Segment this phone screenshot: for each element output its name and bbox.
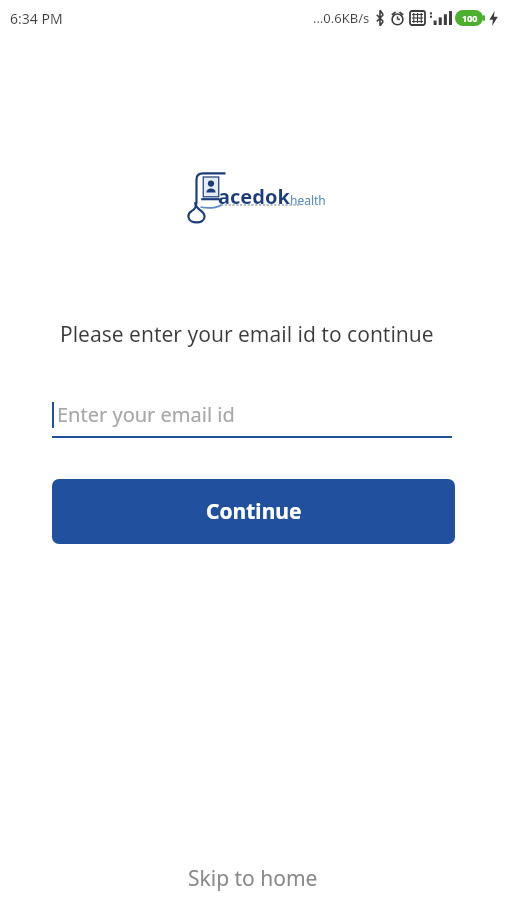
staticText: health [290, 192, 326, 208]
staticText: Skip to home [188, 864, 318, 893]
staticText: Continue [206, 497, 302, 526]
button[interactable]: Continue [52, 479, 455, 544]
button[interactable]: Skip to home [164, 858, 342, 899]
button[interactable]: Enter your email id [52, 392, 452, 438]
staticText: 6:34 PM [10, 9, 63, 28]
staticText: …0.6KB/s [313, 9, 370, 27]
staticText: Enter your email id [57, 401, 235, 428]
staticText: Please enter your email id to continue [60, 320, 434, 349]
staticText: acedok [218, 183, 290, 210]
staticText: 100 [462, 12, 478, 24]
